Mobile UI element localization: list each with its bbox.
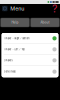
staticText: Menu <box>10 5 24 12</box>
button[interactable]: 2 Players <box>2 55 58 66</box>
button[interactable]: Help <box>50 4 58 13</box>
staticText: About <box>40 21 49 24</box>
button[interactable]: Help <box>0 18 29 27</box>
staticText: ? <box>52 2 57 15</box>
staticText: 1 Player - Left / Top <box>4 48 25 51</box>
button[interactable]: App icon <box>2 6 8 11</box>
button[interactable]: 1 Player - Right / Bottom <box>2 33 58 44</box>
staticText: Help <box>11 21 18 24</box>
staticText: Demo mode <box>4 70 16 73</box>
staticText: 1 Player - Right / Bottom <box>4 37 30 40</box>
button[interactable]: About <box>30 18 59 27</box>
button[interactable]: 1 Player - Left / Top <box>2 44 58 55</box>
staticText: 2 Players <box>4 59 13 62</box>
button[interactable]: Demo mode <box>2 66 58 77</box>
